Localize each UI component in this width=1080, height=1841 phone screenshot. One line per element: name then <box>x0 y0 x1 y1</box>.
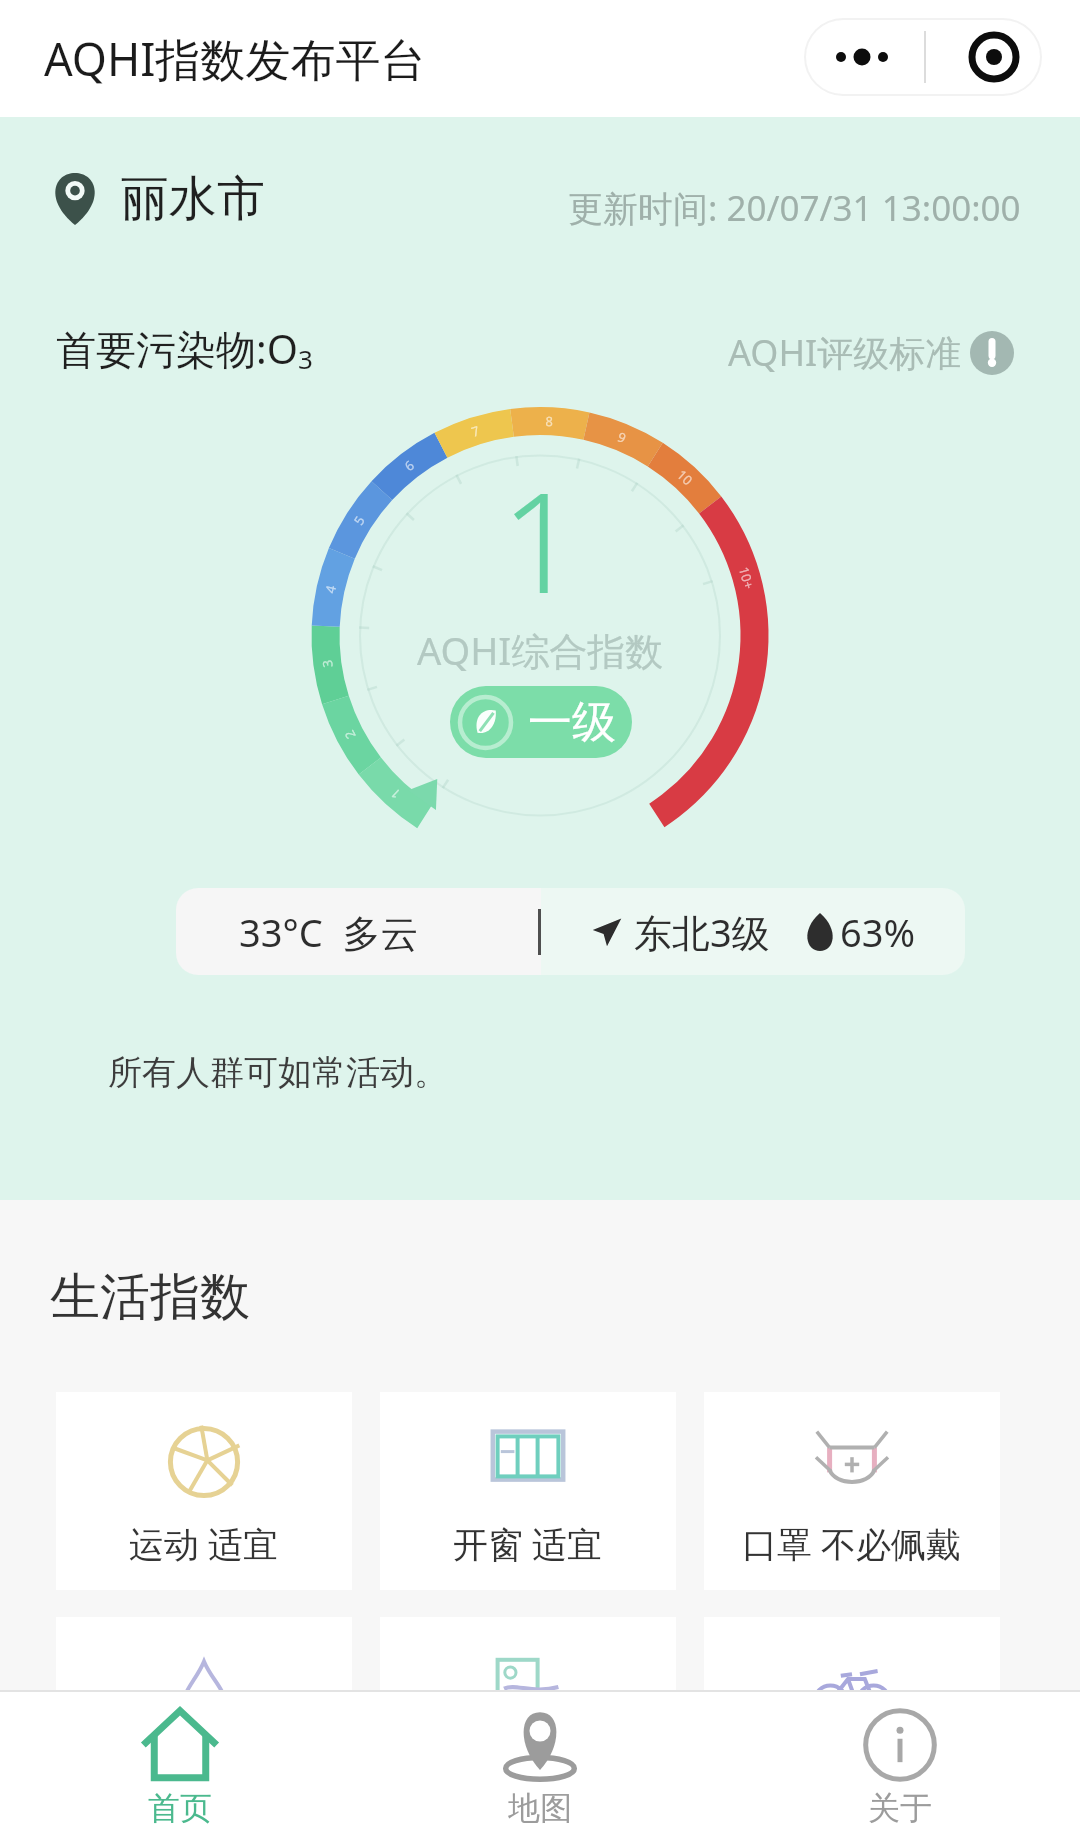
staticText: 开窗 适宜 <box>453 1520 603 1568</box>
button[interactable]: AQHI rating standard info <box>970 331 1014 375</box>
staticText: 地图 <box>508 1788 572 1828</box>
staticText: 3 <box>298 341 313 376</box>
staticText: 更新时间: 20/07/31 13:00:00 <box>568 184 1021 232</box>
button[interactable]: 口罩 不必佩戴 <box>704 1392 1000 1590</box>
staticText: 运动 适宜 <box>129 1520 279 1568</box>
staticText: 所有人群可如常活动。 <box>108 1051 448 1094</box>
staticText: 骑行 适宜 <box>777 1745 927 1793</box>
staticText: 63% <box>840 906 916 958</box>
staticText: 首要污染物:O <box>56 321 298 376</box>
button[interactable]: 开窗 适宜 <box>380 1392 676 1590</box>
staticText: 1 <box>501 445 580 633</box>
button[interactable]: 关于 <box>720 1692 1080 1841</box>
staticText: AQHI指数发布平台 <box>44 28 426 89</box>
staticText: 口罩 不必佩戴 <box>742 1520 962 1568</box>
staticText: 过敏 不易发 <box>112 1745 297 1793</box>
staticText: AQHI综合指数 <box>417 624 664 676</box>
staticText: 生活指数 <box>50 1266 250 1329</box>
button[interactable]: 一级 <box>450 686 632 758</box>
staticText: 首页 <box>148 1788 212 1828</box>
staticText: 关于 <box>868 1788 932 1828</box>
button[interactable]: 地图 <box>360 1692 720 1841</box>
staticText: 一级 <box>528 695 616 750</box>
button[interactable]: 首页 <box>0 1692 360 1841</box>
button[interactable]: 骑行 适宜 <box>704 1617 1000 1815</box>
button[interactable]: 过敏 不易发 <box>56 1617 352 1815</box>
staticText: 33°C 多云 <box>239 906 419 958</box>
button[interactable]: Menu and close <box>806 20 1040 94</box>
staticText: AQHI评级标准 <box>728 328 962 377</box>
button[interactable]: 运动 适宜 <box>56 1392 352 1590</box>
staticText: 晾晒 适宜 <box>453 1745 603 1793</box>
button[interactable]: 晾晒 适宜 <box>380 1617 676 1815</box>
staticText: 丽水市 <box>121 169 265 229</box>
staticText: 东北3级 <box>634 906 770 958</box>
